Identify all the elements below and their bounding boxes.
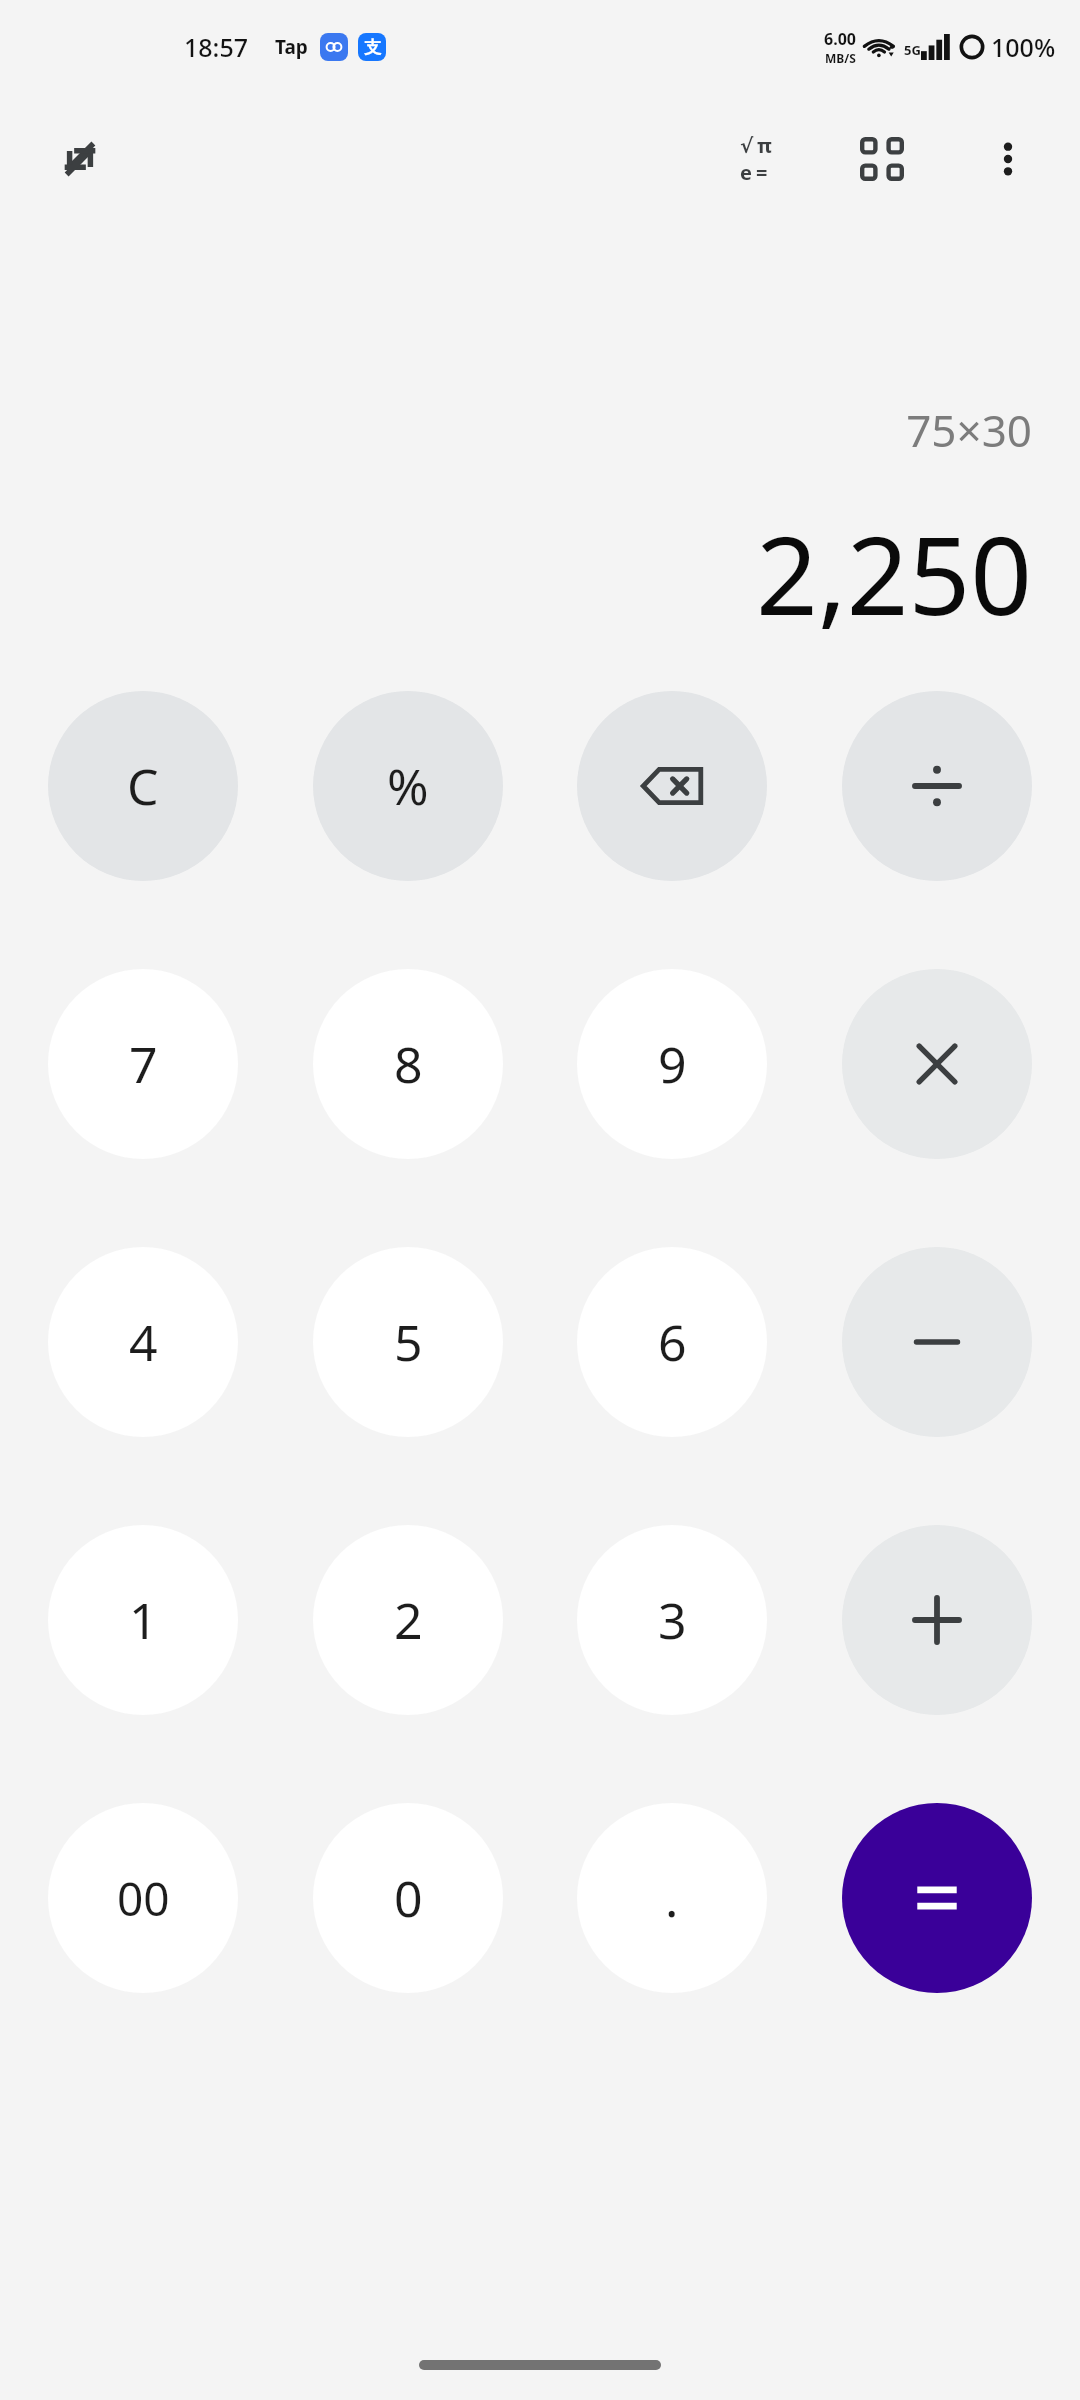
button[interactable]: More options xyxy=(962,113,1054,205)
staticText: 8 xyxy=(394,1030,423,1098)
button[interactable]: 6 xyxy=(577,1247,767,1437)
staticText: 6 xyxy=(658,1308,687,1376)
button[interactable]: % xyxy=(313,691,503,881)
button[interactable]: 1 xyxy=(48,1525,238,1715)
staticText: = xyxy=(756,159,768,186)
staticText: e xyxy=(740,159,752,186)
button[interactable]: 2 xyxy=(313,1525,503,1715)
staticText: 4 xyxy=(129,1308,158,1376)
staticText: 75×30 xyxy=(906,400,1032,460)
staticText: √ xyxy=(740,134,754,157)
staticText: 100% xyxy=(991,30,1056,64)
button[interactable]: Divide xyxy=(842,691,1032,881)
staticText: 0 xyxy=(394,1864,423,1932)
button[interactable]: . xyxy=(577,1803,767,1993)
button[interactable]: 5 xyxy=(313,1247,503,1437)
staticText: 3 xyxy=(658,1586,687,1654)
staticText: 9 xyxy=(658,1030,687,1098)
button[interactable]: Plus xyxy=(842,1525,1032,1715)
button[interactable]: Minus xyxy=(842,1247,1032,1437)
button[interactable]: Equals xyxy=(842,1803,1032,1993)
staticText: . xyxy=(665,1864,679,1932)
staticText: 5G xyxy=(904,41,921,59)
staticText: 7 xyxy=(129,1030,158,1098)
button[interactable]: Backspace xyxy=(577,691,767,881)
button[interactable]: 7 xyxy=(48,969,238,1159)
staticText: π xyxy=(757,132,772,159)
staticText: 1 xyxy=(129,1586,158,1654)
button[interactable]: C xyxy=(48,691,238,881)
staticText: % xyxy=(387,752,429,820)
button[interactable]: 00 xyxy=(48,1803,238,1993)
staticText: Tap xyxy=(275,34,308,60)
staticText: 2,250 xyxy=(755,500,1032,647)
button[interactable]: Scientific mode xyxy=(710,113,802,205)
staticText: 5 xyxy=(394,1308,423,1376)
button[interactable]: 9 xyxy=(577,969,767,1159)
staticText: 18:57 xyxy=(184,30,249,64)
staticText: 00 xyxy=(117,1867,170,1930)
staticText: 支 xyxy=(364,37,381,58)
button[interactable]: Collapse xyxy=(34,113,126,205)
button[interactable]: Converters xyxy=(836,113,928,205)
staticText: 6.00 xyxy=(824,28,856,50)
button[interactable]: 8 xyxy=(313,969,503,1159)
staticText: C xyxy=(127,752,159,820)
staticText: MB/S xyxy=(825,50,856,66)
button[interactable]: Multiply xyxy=(842,969,1032,1159)
button[interactable]: 3 xyxy=(577,1525,767,1715)
button[interactable]: 4 xyxy=(48,1247,238,1437)
button[interactable]: 0 xyxy=(313,1803,503,1993)
staticText: 2 xyxy=(394,1586,423,1654)
